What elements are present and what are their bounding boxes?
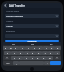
staticText: l: [57, 52, 58, 55]
button[interactable]: s: [11, 51, 18, 55]
button[interactable]: h: [36, 51, 42, 55]
staticText: h: [38, 52, 40, 55]
button[interactable]: a: [4, 51, 11, 55]
button[interactable]: g: [30, 51, 36, 55]
button[interactable]: e: [13, 46, 19, 50]
button[interactable]: for: [42, 42, 61, 45]
button[interactable]: x: [17, 56, 23, 60]
staticText: a: [7, 52, 9, 55]
staticText: s: [14, 52, 15, 55]
button[interactable]: u: [37, 46, 43, 50]
button[interactable]: c: [23, 56, 29, 60]
staticText: n: [43, 57, 45, 60]
button[interactable]: j: [42, 51, 48, 55]
button[interactable]: Shift: [3, 56, 11, 60]
button[interactable]: [5, 34, 59, 38]
button[interactable]: t: [25, 46, 31, 50]
staticText: 120.00: [6, 25, 56, 28]
staticText: j: [45, 52, 46, 55]
staticText: m: [49, 57, 51, 60]
staticText: f: [27, 52, 28, 55]
button[interactable]: l: [54, 51, 60, 55]
staticText: ,: [16, 62, 17, 65]
button[interactable]: i: [43, 46, 49, 50]
staticText: w: [10, 47, 12, 50]
staticText: q: [5, 47, 7, 50]
staticText: Primary checking: [6, 15, 56, 18]
staticText: r: [22, 47, 23, 50]
staticText: p: [57, 47, 59, 50]
button[interactable]: the: [3, 42, 23, 45]
button[interactable]: b: [35, 56, 41, 60]
staticText: c: [26, 57, 27, 60]
button[interactable]: v: [29, 56, 35, 60]
button[interactable]: and: [23, 42, 42, 45]
button[interactable]: Continue: [5, 40, 59, 42]
staticText: t: [28, 47, 29, 50]
staticText: y: [34, 47, 35, 50]
button[interactable]: n: [41, 56, 47, 60]
button[interactable]: ?123: [3, 61, 13, 65]
button[interactable]: Back: [3, 3, 8, 8]
staticText: k: [50, 52, 52, 55]
staticText: u: [39, 47, 41, 50]
staticText: o: [51, 47, 53, 50]
button[interactable]: y: [31, 46, 37, 50]
staticText: Add Transfer: [9, 4, 25, 8]
button[interactable]: w: [8, 46, 13, 50]
button[interactable]: 120.00: [5, 24, 59, 28]
button[interactable]: .: [44, 61, 50, 65]
button[interactable]: z: [11, 56, 17, 60]
button[interactable]: k: [48, 51, 54, 55]
button[interactable]: q: [3, 46, 8, 50]
staticText: g: [32, 52, 34, 55]
staticText: d: [20, 52, 22, 55]
staticText: v: [32, 57, 33, 60]
staticText: for: [50, 43, 53, 45]
staticText: i: [46, 47, 47, 50]
button[interactable]: Backspace: [53, 56, 61, 60]
staticText: .: [47, 62, 48, 65]
staticText: z: [14, 57, 15, 60]
button[interactable]: Enter: [50, 61, 61, 65]
staticText: x: [19, 57, 21, 60]
staticText: Account name: [6, 10, 19, 13]
button[interactable]: o: [49, 46, 55, 50]
staticText: e: [15, 47, 17, 50]
button[interactable]: p: [55, 46, 61, 50]
button[interactable]: d: [18, 51, 24, 55]
staticText: ?123: [6, 62, 10, 64]
button[interactable]: ,: [13, 61, 19, 65]
staticText: Amount: [6, 20, 14, 23]
staticText: Reference: [6, 30, 15, 33]
button[interactable]: f: [24, 51, 30, 55]
staticText: Continue: [27, 40, 37, 42]
button[interactable]: r: [19, 46, 25, 50]
staticText: the: [12, 43, 15, 45]
staticText: and: [31, 43, 35, 45]
staticText: b: [37, 57, 39, 60]
button[interactable]: Primary checking: [5, 14, 59, 18]
button[interactable]: m: [47, 56, 53, 60]
